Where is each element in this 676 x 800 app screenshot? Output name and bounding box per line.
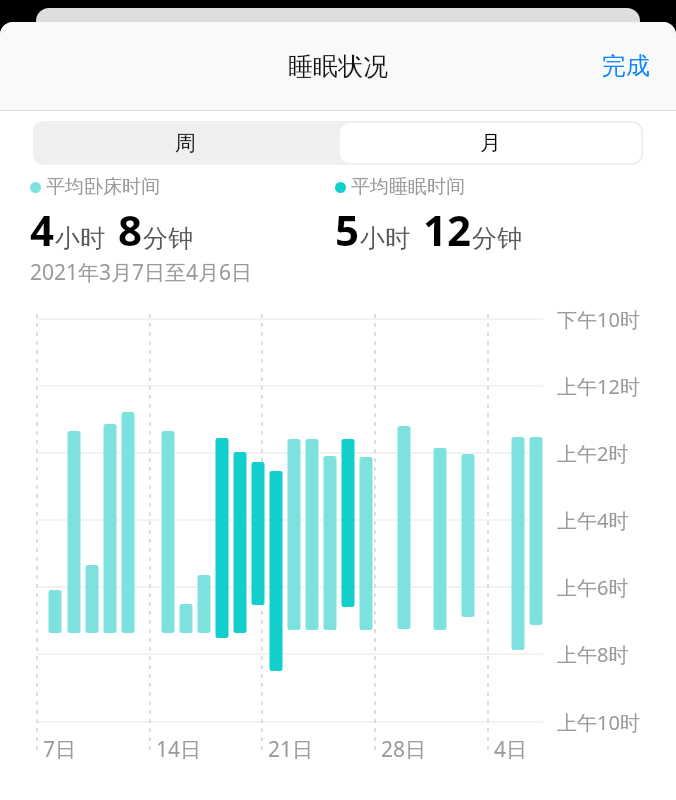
staticText: 下午10时 <box>557 306 640 333</box>
staticText: 7日 <box>43 735 77 764</box>
staticText: 上午6时 <box>557 574 629 601</box>
staticText: 5 <box>335 201 360 258</box>
staticText: 平均卧床时间 <box>46 175 160 199</box>
staticText: 8 <box>118 201 143 258</box>
staticText: 小时 <box>360 223 410 254</box>
staticText: 2021年3月7日至4月6日 <box>30 258 253 287</box>
staticText: 睡眠状况 <box>288 51 388 82</box>
staticText: 小时 <box>55 223 105 254</box>
staticText: 月 <box>480 130 501 156</box>
staticText: 周 <box>175 130 196 156</box>
staticText: 上午8时 <box>557 641 629 668</box>
staticText: 上午10时 <box>557 709 640 736</box>
button[interactable]: 周 <box>33 121 338 165</box>
staticText: 14日 <box>156 735 202 764</box>
staticText: 28日 <box>381 735 427 764</box>
staticText: 平均睡眠时间 <box>351 175 465 199</box>
button[interactable]: 完成 <box>576 37 676 95</box>
staticText: 4 <box>30 201 55 258</box>
button[interactable]: 月 <box>340 123 641 163</box>
staticText: 4日 <box>494 735 528 764</box>
staticText: 上午4时 <box>557 507 629 534</box>
staticText: 上午12时 <box>557 373 640 400</box>
staticText: 上午2时 <box>557 440 629 467</box>
staticText: 12 <box>423 201 472 258</box>
staticText: 完成 <box>602 51 650 81</box>
staticText: 21日 <box>268 735 314 764</box>
staticText: 分钟 <box>143 223 193 254</box>
staticText: 分钟 <box>472 223 522 254</box>
